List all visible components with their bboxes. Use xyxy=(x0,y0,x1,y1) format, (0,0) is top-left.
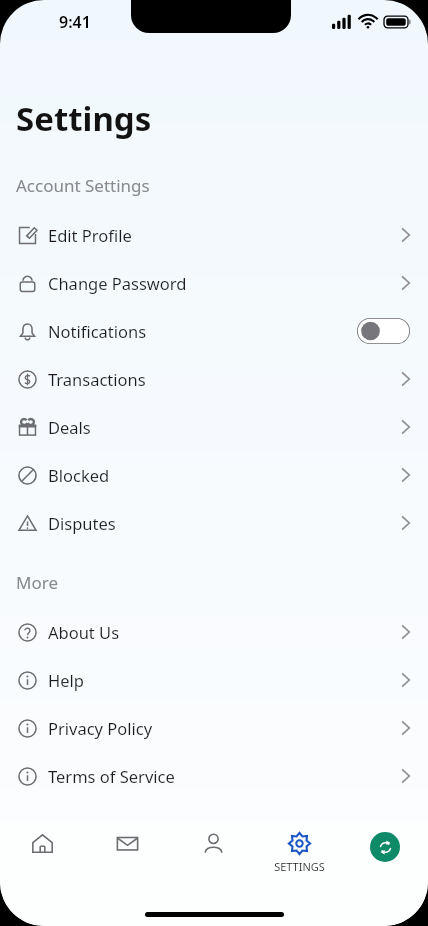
button[interactable]: Profile xyxy=(170,832,256,855)
button[interactable]: Edit Profile xyxy=(0,211,428,259)
staticText: Deals xyxy=(48,416,91,438)
staticText: More xyxy=(16,571,58,594)
button[interactable]: SETTINGS xyxy=(256,832,342,874)
button[interactable]: Mail xyxy=(85,832,170,855)
button[interactable]: Disputes xyxy=(0,499,428,547)
button[interactable]: Deals xyxy=(0,403,428,451)
button[interactable]: About Us xyxy=(0,608,428,656)
button[interactable]: Blocked xyxy=(0,451,428,499)
staticText: Edit Profile xyxy=(48,224,132,246)
staticText: Account Settings xyxy=(16,174,150,197)
button[interactable]: Home xyxy=(0,832,85,855)
button[interactable]: Transactions xyxy=(0,355,428,403)
staticText: Privacy Policy xyxy=(48,717,153,739)
staticText: Change Password xyxy=(48,272,187,294)
staticText: Settings xyxy=(16,96,152,141)
staticText: Help xyxy=(48,669,84,691)
staticText: Notifications xyxy=(48,320,147,342)
button[interactable]: Change Password xyxy=(0,259,428,307)
staticText: Transactions xyxy=(48,368,146,390)
staticText: About Us xyxy=(48,621,120,643)
button[interactable]: Privacy Policy xyxy=(0,704,428,752)
button[interactable]: Terms of Service xyxy=(0,752,428,800)
button[interactable]: Refresh xyxy=(370,832,400,862)
button[interactable]: Notifications xyxy=(0,307,428,355)
button[interactable]: Notifications toggle xyxy=(357,318,410,344)
staticText: SETTINGS xyxy=(274,859,325,874)
button[interactable]: Help xyxy=(0,656,428,704)
staticText: Blocked xyxy=(48,464,110,486)
staticText: Terms of Service xyxy=(48,765,175,787)
staticText: 9:41 xyxy=(59,11,91,33)
staticText: Disputes xyxy=(48,512,116,534)
